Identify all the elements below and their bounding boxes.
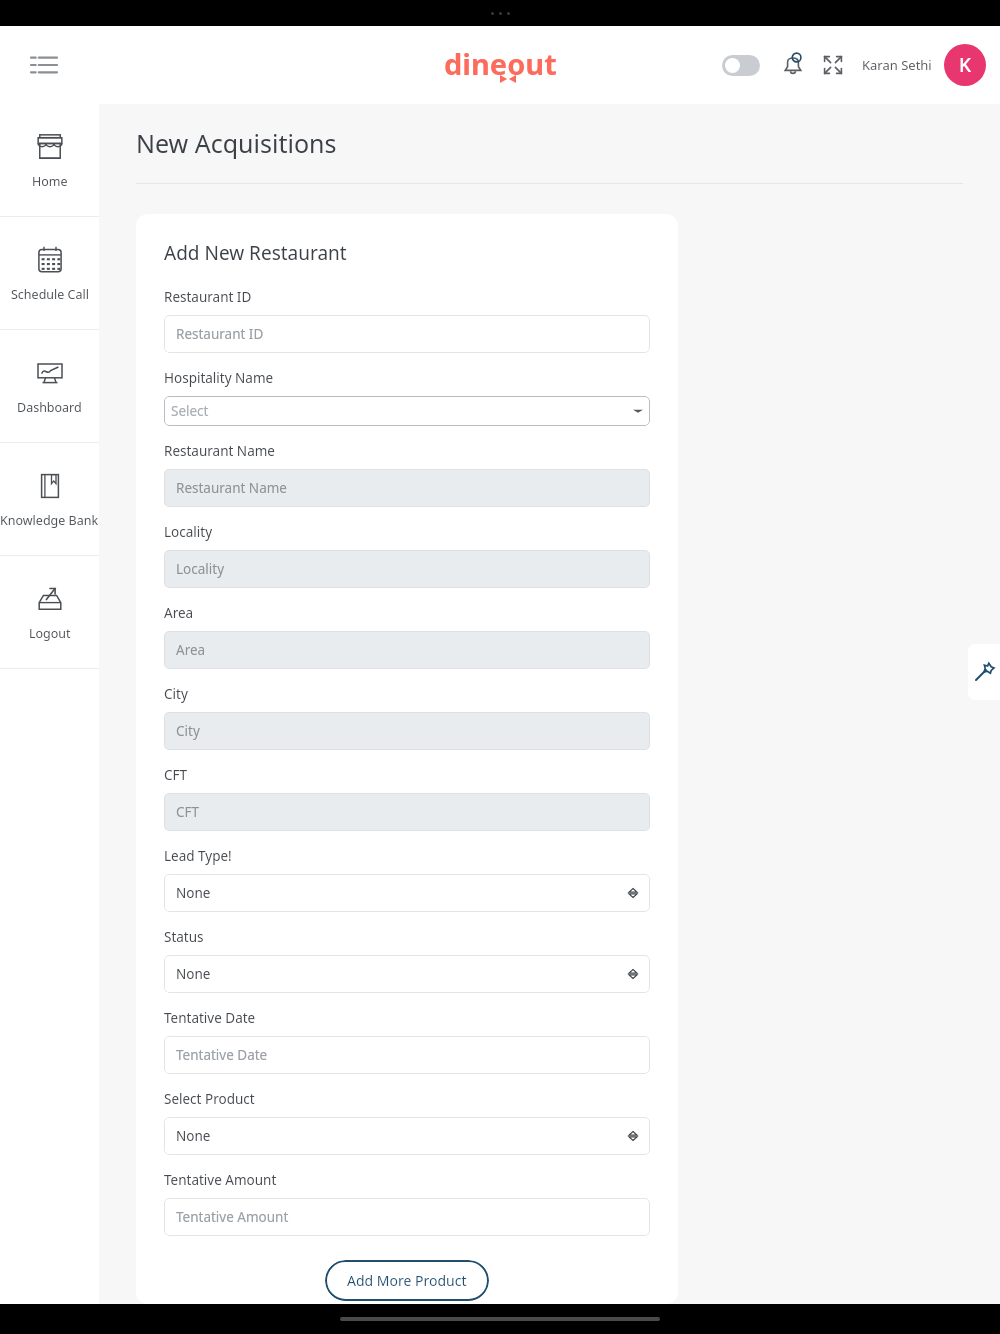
staticText: K <box>959 52 972 78</box>
staticText: Knowledge Bank <box>0 512 99 529</box>
staticText: None <box>176 965 211 983</box>
staticText: Restaurant Name <box>176 479 287 497</box>
staticText: Lead Type! <box>164 847 232 865</box>
button[interactable]: None <box>164 874 650 912</box>
staticText: Hospitality Name <box>164 369 274 387</box>
staticText: Schedule Call <box>11 286 89 303</box>
staticText: Area <box>176 641 206 659</box>
button[interactable]: Locality <box>164 550 650 588</box>
button[interactable]: Area <box>164 631 650 669</box>
button[interactable]: Tentative Amount <box>164 1198 650 1236</box>
button[interactable]: None <box>164 1117 650 1155</box>
staticText: Locality <box>164 523 213 541</box>
button[interactable]: Magic tools <box>968 644 1000 700</box>
button[interactable]: Restaurant Name <box>164 469 650 507</box>
staticText: Area <box>164 604 194 622</box>
button[interactable]: Logout <box>0 556 99 668</box>
staticText: Add More Product <box>347 1271 467 1290</box>
staticText: Restaurant ID <box>164 288 252 306</box>
staticText: City <box>164 685 188 703</box>
staticText: CFT <box>176 803 200 821</box>
button[interactable]: Tentative Date <box>164 1036 650 1074</box>
staticText: Locality <box>176 560 225 578</box>
staticText: dineout <box>444 44 557 83</box>
button[interactable]: Menu <box>22 43 66 87</box>
button[interactable]: Karan Sethi <box>862 44 986 86</box>
staticText: None <box>176 884 211 902</box>
staticText: Status <box>164 928 204 946</box>
staticText: Karan Sethi <box>862 56 932 74</box>
button[interactable]: Home <box>0 104 99 216</box>
button[interactable]: Schedule Call <box>0 217 99 329</box>
button[interactable]: City <box>164 712 650 750</box>
staticText: Tentative Amount <box>176 1208 289 1226</box>
staticText: None <box>176 1127 211 1145</box>
staticText: Dashboard <box>17 399 82 416</box>
button[interactable]: Dashboard <box>0 330 99 442</box>
button[interactable]: CFT <box>164 793 650 831</box>
staticText: Home <box>32 173 68 190</box>
button[interactable]: None <box>164 955 650 993</box>
staticText: City <box>176 722 200 740</box>
staticText: Select Product <box>164 1090 255 1108</box>
button[interactable]: Select <box>164 396 650 426</box>
staticText: CFT <box>164 766 188 784</box>
staticText: Restaurant Name <box>164 442 275 460</box>
button[interactable]: Notifications <box>776 48 810 82</box>
staticText: Logout <box>29 625 71 642</box>
staticText: Tentative Date <box>164 1009 256 1027</box>
staticText: Add New Restaurant <box>164 240 347 266</box>
button[interactable]: Restaurant ID <box>164 315 650 353</box>
button[interactable]: Fullscreen <box>818 50 848 80</box>
button[interactable]: Add More Product <box>325 1260 489 1301</box>
staticText: Select <box>171 402 209 420</box>
button[interactable]: Knowledge Bank <box>0 443 99 555</box>
staticText: New Acquisitions <box>136 126 337 160</box>
button[interactable]: Toggle theme <box>722 55 760 76</box>
staticText: Tentative Date <box>176 1046 268 1064</box>
staticText: Restaurant ID <box>176 325 264 343</box>
staticText: Tentative Amount <box>164 1171 277 1189</box>
